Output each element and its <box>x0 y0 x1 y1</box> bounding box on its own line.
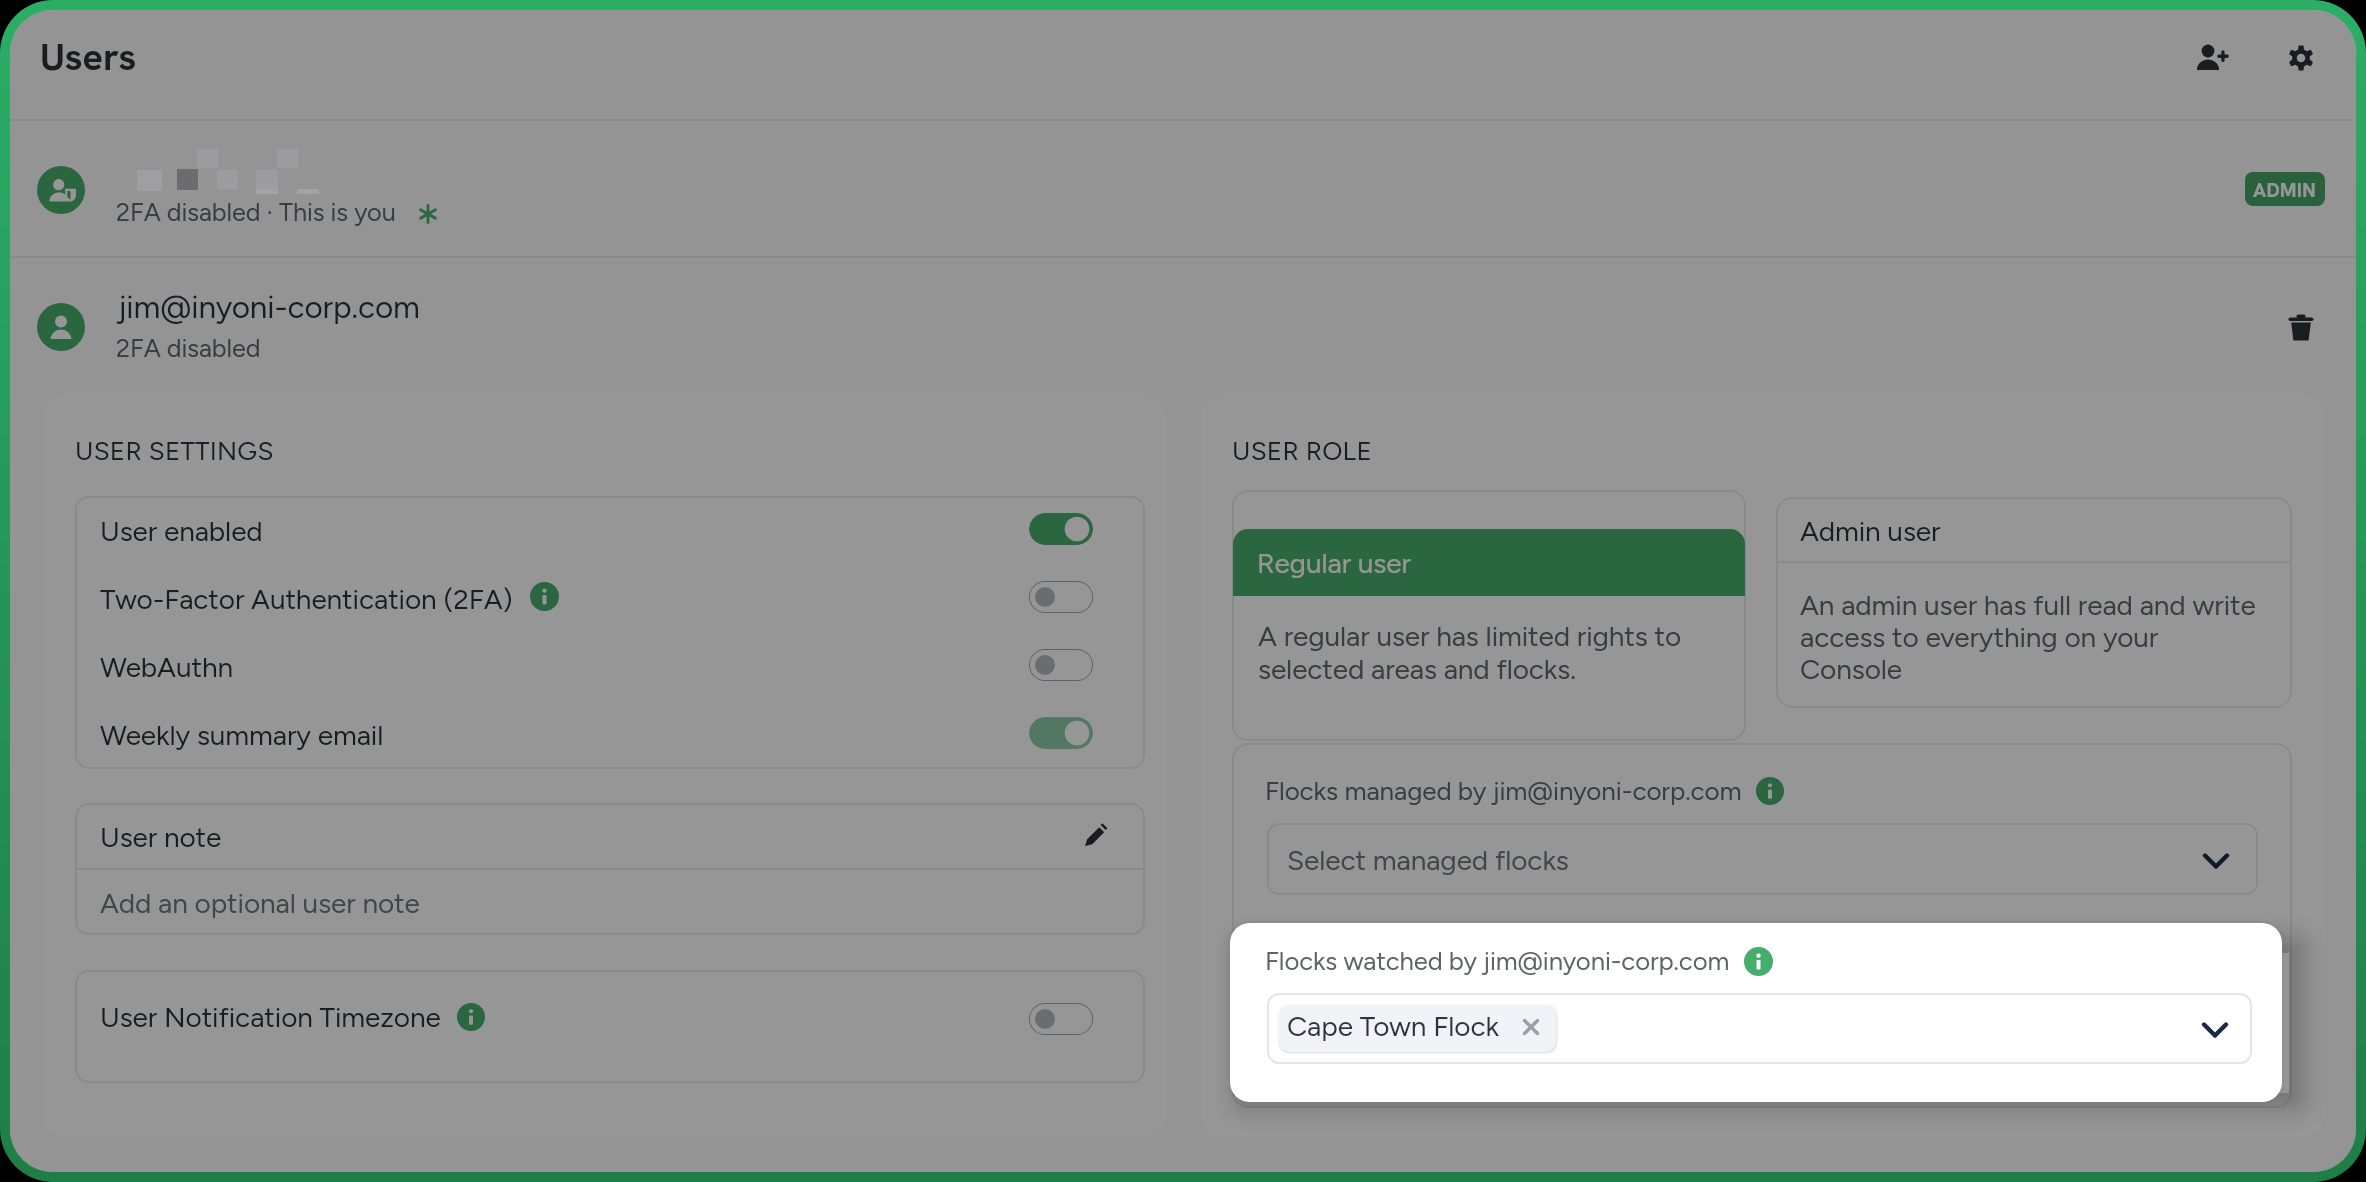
staticText: USER ROLE <box>1232 435 1373 466</box>
staticText: Users <box>40 32 137 82</box>
staticText: Console <box>1800 652 1903 686</box>
button[interactable] <box>10 258 2356 393</box>
button[interactable] <box>1029 649 1093 681</box>
button[interactable] <box>76 971 1144 1082</box>
staticText: 2FA disabled <box>116 333 261 363</box>
staticText: WebAuthn <box>100 650 233 684</box>
staticText: selected areas and flocks. <box>1258 652 1576 686</box>
button[interactable] <box>76 563 1144 631</box>
button[interactable]: Settings <box>2273 30 2329 86</box>
button[interactable] <box>76 699 1144 767</box>
button[interactable] <box>76 631 1144 699</box>
staticText: access to everything on your <box>1800 620 2159 654</box>
button[interactable]: Expand <box>2197 1012 2233 1048</box>
staticText: Weekly summary email <box>100 718 384 752</box>
button[interactable] <box>1029 581 1093 613</box>
staticText: Two-Factor Authentication (2FA) <box>100 582 513 616</box>
button[interactable]: Remove Cape Town Flock <box>1515 1011 1547 1043</box>
button[interactable] <box>2245 172 2325 206</box>
button[interactable]: Delete user <box>2273 300 2329 356</box>
staticText: User enabled <box>100 514 263 548</box>
staticText: User Notification Timezone <box>100 1000 441 1034</box>
staticText: An admin user has full read and write <box>1800 588 2256 622</box>
staticText: Admin user <box>1800 514 1941 548</box>
staticText: USER SETTINGS <box>75 435 274 466</box>
staticText: Flocks managed by jim@inyoni-corp.com <box>1265 775 1742 806</box>
staticText: User note <box>100 820 222 854</box>
button[interactable] <box>10 121 2356 256</box>
button[interactable] <box>1268 824 2257 894</box>
button[interactable] <box>1029 1003 1093 1035</box>
button[interactable]: Add user <box>2183 29 2239 85</box>
staticText: Flocks watched by jim@inyoni-corp.com <box>1265 946 1730 977</box>
button[interactable]: Edit user note <box>1074 813 1118 857</box>
staticText: ADMIN <box>2253 177 2316 202</box>
staticText: A regular user has limited rights to <box>1258 619 1682 653</box>
staticText: 2FA disabled · This is you <box>116 197 396 227</box>
button[interactable] <box>1232 490 1746 741</box>
button[interactable] <box>1268 994 2251 1063</box>
staticText: Cape Town Flock <box>1287 1009 1499 1043</box>
button[interactable] <box>1279 1005 1556 1052</box>
button[interactable] <box>1029 717 1093 749</box>
button[interactable] <box>1029 513 1093 545</box>
button[interactable] <box>76 495 1144 563</box>
button[interactable]: Expand <box>2198 843 2234 879</box>
staticText: jim@inyoni-corp.com <box>118 288 420 326</box>
staticText: Select managed flocks <box>1287 843 1569 877</box>
button[interactable] <box>76 804 1144 868</box>
staticText: Add an optional user note <box>100 886 420 920</box>
staticText: Regular user <box>1257 546 1411 580</box>
button[interactable] <box>1776 497 2292 708</box>
